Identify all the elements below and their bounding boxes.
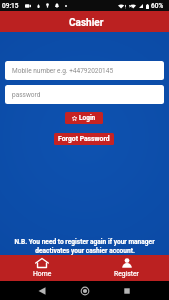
button[interactable]: Mobile number e.g. +44792020145: [5, 61, 164, 80]
staticText: deactivates your cashier account.: [35, 247, 135, 255]
button[interactable]: Recent apps: [119, 283, 135, 299]
staticText: Register: [114, 270, 139, 278]
staticText: Login: [79, 114, 96, 122]
staticText: Forgot Password: [58, 135, 110, 143]
staticText: 09:15: [2, 2, 19, 10]
staticText: Cashier: [69, 17, 104, 29]
button[interactable]: Back: [34, 283, 50, 299]
button[interactable]: password: [5, 85, 164, 104]
button[interactable]: Home: [0, 255, 84, 281]
staticText: 60%: [151, 2, 164, 10]
staticText: N.B. You need to register again if your …: [14, 238, 155, 246]
button[interactable]: Login: [65, 112, 103, 124]
staticText: Home: [33, 270, 52, 278]
button[interactable]: Home: [77, 283, 93, 299]
button[interactable]: Forgot Password: [54, 133, 114, 145]
button[interactable]: Register: [84, 255, 169, 281]
staticText: Mobile number e.g. +44792020145: [12, 67, 114, 75]
staticText: password: [12, 91, 41, 99]
